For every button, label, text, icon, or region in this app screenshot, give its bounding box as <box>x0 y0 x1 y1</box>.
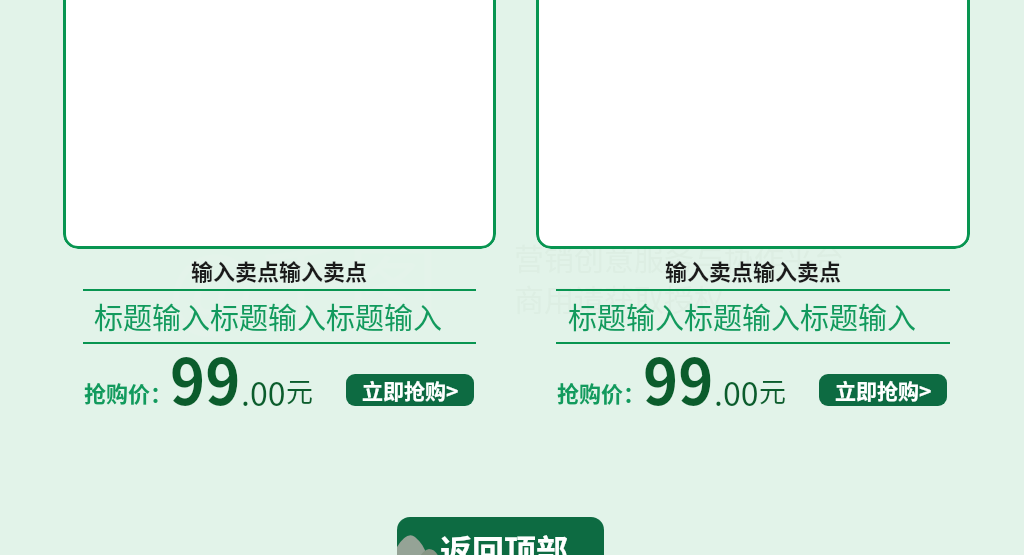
staticText: 营销创意服务与协作平台 <box>514 235 844 278</box>
staticText: 元 <box>759 371 786 410</box>
button[interactable]: 商品图片 <box>536 0 970 249</box>
staticText: 99 <box>643 332 714 423</box>
button[interactable]: 立即抢购> <box>819 374 947 406</box>
button[interactable]: 立即抢购> <box>346 374 474 406</box>
staticText: 抢购价： <box>557 376 646 408</box>
staticText: 商用请获取授权 <box>514 276 724 319</box>
staticText: 元 <box>286 371 313 410</box>
staticText: 输入卖点输入卖点 <box>191 254 368 286</box>
staticText: .00 <box>241 369 286 415</box>
staticText: 标题输入标题输入标题输入 <box>94 295 443 337</box>
staticText: 标题输入标题输入标题输入 <box>568 295 917 337</box>
staticText: 立即抢购> <box>835 375 932 405</box>
staticText: 立即抢购> <box>362 375 459 405</box>
staticText: 返回顶部 <box>440 526 569 555</box>
staticText: .00 <box>714 369 759 415</box>
staticText: @千图 <box>168 214 440 347</box>
staticText: 输入卖点输入卖点 <box>665 254 842 286</box>
staticText: 抢购价： <box>84 376 173 408</box>
staticText: 99 <box>170 332 241 423</box>
button[interactable]: 商品图片 <box>63 0 496 249</box>
button[interactable]: 返回顶部 <box>397 517 604 555</box>
